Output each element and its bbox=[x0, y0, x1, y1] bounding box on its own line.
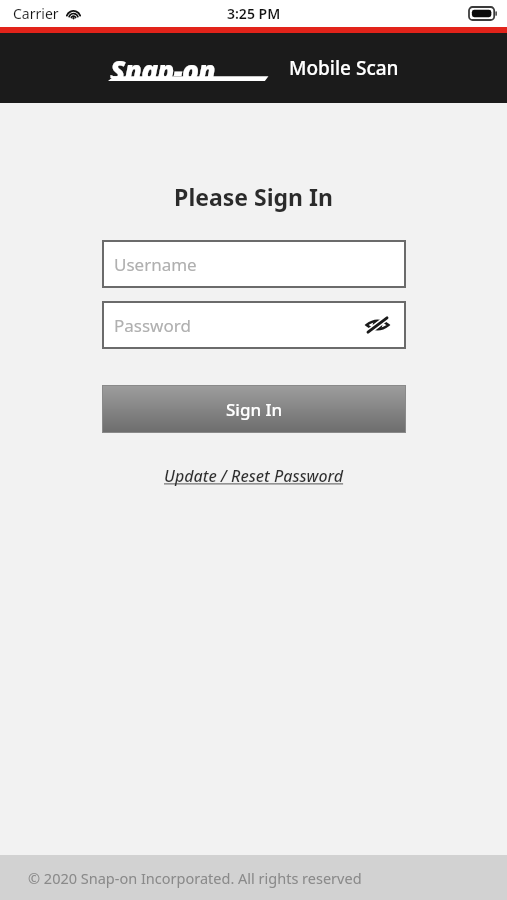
staticText: Mobile Scan bbox=[289, 55, 399, 81]
button[interactable]: Update / Reset Password bbox=[154, 459, 354, 493]
button[interactable]: Username bbox=[102, 240, 406, 288]
button[interactable]: Password bbox=[102, 301, 406, 349]
button[interactable]: Show password bbox=[362, 310, 392, 340]
staticText: Snap-on bbox=[110, 51, 215, 78]
staticText: Please Sign In bbox=[174, 181, 333, 212]
staticText: 3:25 PM bbox=[227, 4, 281, 23]
staticText: Password bbox=[114, 314, 191, 337]
staticText: © 2020 Snap-on Incorporated. All rights … bbox=[28, 868, 362, 888]
staticText: Carrier bbox=[13, 4, 59, 23]
staticText: Username bbox=[114, 253, 197, 276]
staticText: Sign In bbox=[226, 398, 283, 421]
button[interactable]: Sign In bbox=[102, 385, 406, 433]
staticText: Update / Reset Password bbox=[164, 465, 344, 487]
